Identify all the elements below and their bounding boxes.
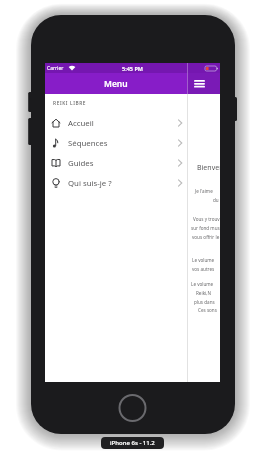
staticText: sur fond musical <box>191 225 220 231</box>
staticText: Qui suis-je ? <box>68 178 112 189</box>
staticText: plus dans <box>194 299 215 305</box>
staticText: Reiki,N <box>196 290 211 296</box>
staticText: Le volume <box>192 257 215 263</box>
staticText: Séquences <box>68 138 108 149</box>
staticText: Menu <box>104 78 128 90</box>
staticText: Ces sons <box>198 307 217 313</box>
staticText: Guides <box>68 158 94 169</box>
staticText: Bienvenue <box>197 163 220 173</box>
staticText: iPhone 6s - 11.2 <box>110 439 155 447</box>
staticText: vos autres <box>192 266 215 272</box>
staticText: REIKI LIBRE <box>53 100 87 107</box>
button[interactable] <box>187 73 220 94</box>
staticText: Carrier <box>47 65 64 72</box>
staticText: Accueil <box>68 118 94 129</box>
button[interactable]: Guides <box>45 153 187 173</box>
button[interactable]: Séquences <box>45 133 187 153</box>
staticText: Vous y trouverez <box>193 216 220 222</box>
button[interactable]: Accueil <box>45 113 187 133</box>
staticText: vous offrir le <box>192 234 220 240</box>
staticText: Le volume <box>191 281 214 287</box>
button[interactable]: Qui suis-je ? <box>45 173 187 193</box>
staticText: 5:45 PM <box>122 65 143 72</box>
staticText: Je l'aime <box>195 188 213 194</box>
staticText: du <box>213 197 219 203</box>
